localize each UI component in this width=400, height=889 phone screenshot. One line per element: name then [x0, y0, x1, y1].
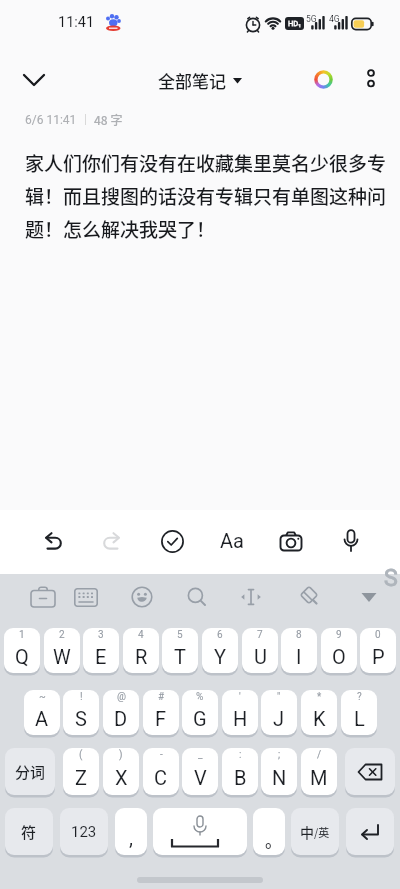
button[interactable]: 。 [253, 808, 285, 856]
button[interactable]: 123 [60, 808, 108, 856]
button[interactable]: / [301, 748, 337, 796]
staticText: 分词 [15, 761, 46, 783]
button[interactable]: 全部笔记 [158, 68, 242, 93]
staticText: 。 [265, 827, 282, 852]
staticText: D [114, 707, 128, 730]
button[interactable] [308, 64, 339, 95]
staticText: ) [119, 749, 123, 761]
staticText: 123 [71, 823, 97, 841]
staticText: 4 [138, 629, 144, 641]
staticText: 1 [19, 629, 25, 641]
button[interactable]: 6 [202, 628, 238, 674]
button[interactable]: Aa [213, 522, 251, 558]
button[interactable] [356, 64, 386, 94]
button[interactable] [181, 581, 213, 613]
staticText: L [354, 707, 365, 730]
button[interactable]: ' [222, 690, 258, 736]
staticText: N [272, 766, 287, 789]
button[interactable]: ! [63, 690, 99, 736]
staticText: - [160, 749, 163, 761]
button[interactable]: # [143, 690, 179, 736]
staticText: W [53, 645, 71, 668]
button[interactable]: ; [261, 748, 297, 796]
button[interactable] [275, 525, 307, 557]
button[interactable] [70, 581, 102, 613]
button[interactable]: ( [63, 748, 99, 796]
button[interactable] [156, 525, 188, 557]
staticText: 4G [329, 14, 340, 24]
button[interactable]: @ [103, 690, 139, 736]
button[interactable]: 4 [123, 628, 159, 674]
button[interactable]: 8 [281, 628, 317, 674]
button[interactable] [153, 808, 247, 856]
staticText: /英 [314, 824, 330, 840]
staticText: 2 [59, 629, 65, 641]
button[interactable] [346, 808, 394, 856]
staticText: M [310, 766, 328, 789]
button[interactable] [14, 62, 54, 98]
staticText: S [75, 707, 87, 730]
button[interactable]: 中 [291, 808, 339, 856]
button[interactable]: ? [341, 690, 377, 736]
button[interactable] [96, 525, 128, 557]
button[interactable]: 2 [44, 628, 80, 674]
staticText: ( [79, 749, 83, 761]
button[interactable]: 符 [5, 808, 53, 856]
staticText: 7 [257, 629, 263, 641]
staticText: P [372, 645, 385, 668]
button[interactable]: ) [103, 748, 139, 796]
staticText: J [273, 707, 285, 730]
button[interactable]: 0 [360, 628, 396, 674]
button[interactable] [126, 581, 158, 613]
staticText: " [277, 691, 281, 703]
staticText: _ [198, 749, 203, 761]
button[interactable]: - [143, 748, 179, 796]
staticText: K [313, 707, 326, 730]
button[interactable]: % [182, 690, 218, 736]
staticText: B [234, 766, 247, 789]
staticText: 11:41 [58, 14, 95, 31]
staticText: % [196, 691, 204, 703]
button[interactable] [353, 581, 385, 613]
button[interactable]: " [261, 690, 297, 736]
button[interactable]: ~ [24, 690, 60, 736]
staticText: ? [357, 691, 362, 703]
staticText: I [296, 645, 302, 668]
staticText: U [254, 645, 267, 668]
staticText: 5G [306, 14, 317, 24]
staticText: O [332, 645, 346, 668]
staticText: HD₁ [288, 19, 302, 28]
staticText: 5 [177, 629, 183, 641]
staticText: * [317, 691, 322, 703]
button[interactable] [294, 581, 326, 613]
button[interactable] [235, 581, 267, 613]
button[interactable]: 9 [321, 628, 357, 674]
button[interactable]: 5 [162, 628, 198, 674]
button[interactable]: , [115, 808, 147, 856]
button[interactable] [36, 525, 68, 557]
button[interactable]: _ [182, 748, 218, 796]
staticText: 48 字 [94, 111, 123, 128]
staticText: # [158, 691, 165, 703]
button[interactable]: 7 [242, 628, 278, 674]
button[interactable]: : [222, 748, 258, 796]
staticText: : [239, 749, 242, 761]
staticText: Q [15, 645, 29, 668]
button[interactable] [345, 748, 395, 796]
button[interactable]: * [301, 690, 337, 736]
staticText: @ [117, 691, 126, 703]
button[interactable] [27, 581, 59, 613]
staticText: , [129, 826, 133, 849]
staticText: Y [214, 645, 227, 668]
staticText: A [35, 707, 49, 730]
staticText: 9 [336, 629, 342, 641]
staticText: X [115, 766, 128, 789]
button[interactable]: 3 [83, 628, 119, 674]
staticText: ; [278, 749, 281, 761]
staticText: E [95, 645, 107, 668]
button[interactable]: 分词 [5, 748, 55, 796]
staticText: C [154, 766, 168, 789]
button[interactable] [335, 525, 367, 557]
button[interactable]: 1 [4, 628, 40, 674]
staticText: 6 [217, 629, 223, 641]
